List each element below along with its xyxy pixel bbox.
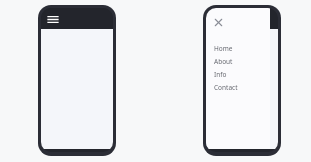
button[interactable]: Open navigation menu xyxy=(38,5,116,156)
button[interactable]: Home xyxy=(214,42,278,55)
button[interactable]: Close navigation menu xyxy=(203,5,281,156)
button[interactable]: Open navigation menu xyxy=(46,14,60,25)
button[interactable]: About xyxy=(214,55,278,68)
staticText: Home xyxy=(214,44,233,53)
staticText: Info xyxy=(214,70,227,79)
staticText: About xyxy=(214,57,233,66)
button[interactable]: Close navigation menu xyxy=(206,8,270,149)
button[interactable]: Info xyxy=(214,68,278,81)
button[interactable]: Close navigation menu xyxy=(214,18,223,27)
button[interactable]: Contact xyxy=(214,81,278,94)
staticText: Contact xyxy=(214,83,238,92)
